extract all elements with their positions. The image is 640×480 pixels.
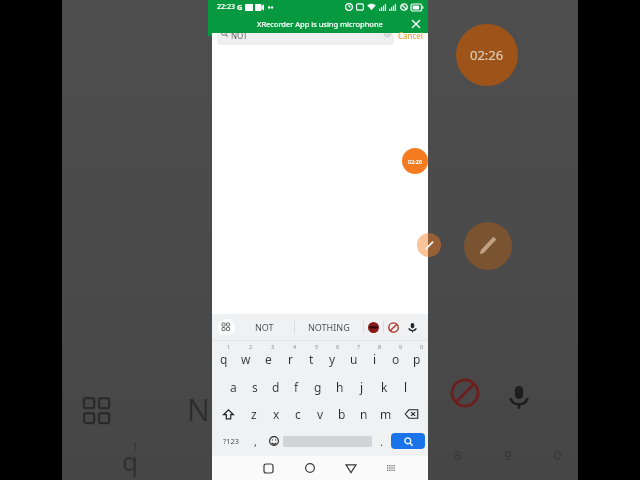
- staticText: l: [404, 379, 408, 395]
- button[interactable]: Recents: [248, 456, 289, 480]
- staticText: ,: [254, 434, 257, 449]
- staticText: 6: [336, 343, 340, 350]
- staticText: 9: [504, 446, 512, 464]
- staticText: NOT: [255, 321, 274, 333]
- button[interactable]: m: [375, 404, 397, 424]
- button[interactable]: y: [322, 344, 343, 370]
- button[interactable]: Back: [330, 456, 371, 480]
- staticText: 0: [420, 343, 424, 350]
- staticText: 8: [378, 343, 382, 350]
- staticText: 5: [315, 343, 319, 350]
- staticText: 9: [399, 343, 403, 350]
- staticText: G: [237, 2, 243, 12]
- staticText: w: [241, 351, 251, 367]
- staticText: 1: [132, 439, 139, 454]
- button[interactable]: Search: [391, 433, 425, 449]
- staticText: p: [413, 351, 421, 367]
- staticText: XRecorder App is using microphone: [257, 19, 383, 29]
- staticText: 02:26: [408, 158, 423, 165]
- button[interactable]: ?123: [215, 431, 247, 451]
- button[interactable]: i: [364, 344, 385, 370]
- button[interactable]: Cancel: [394, 33, 423, 45]
- button[interactable]: f: [286, 377, 307, 397]
- staticText: NOTHING: [308, 321, 350, 333]
- button[interactable]: n: [353, 404, 375, 424]
- staticText: .: [380, 434, 383, 449]
- button[interactable]: j: [351, 377, 373, 397]
- button[interactable]: x: [265, 404, 287, 424]
- staticText: 02:26: [470, 46, 504, 64]
- button[interactable]: NOT: [235, 314, 294, 340]
- button[interactable]: Shift: [214, 404, 243, 424]
- staticText: g: [314, 379, 322, 395]
- staticText: q: [122, 443, 138, 478]
- button[interactable]: r: [279, 344, 301, 370]
- button[interactable]: Backspace: [397, 404, 426, 424]
- staticText: N: [187, 389, 210, 430]
- button[interactable]: Dismiss: [410, 18, 422, 30]
- button[interactable]: t: [301, 344, 322, 370]
- button[interactable]: p: [406, 344, 427, 370]
- button[interactable]: q: [213, 344, 235, 370]
- button[interactable]: Hide keyboard: [371, 456, 412, 480]
- button[interactable]: .: [372, 431, 391, 451]
- staticText: 0: [554, 446, 562, 464]
- button[interactable]: a: [223, 377, 244, 397]
- button[interactable]: e: [257, 344, 279, 370]
- button[interactable]: Emoji: [264, 431, 283, 451]
- button[interactable]: Toolbar: [218, 319, 235, 336]
- staticText: 1: [227, 343, 231, 350]
- staticText: c: [295, 406, 301, 422]
- button[interactable]: ,: [247, 431, 264, 451]
- button[interactable]: z: [243, 404, 265, 424]
- staticText: NOT: [231, 33, 248, 41]
- button[interactable]: Edit: [417, 233, 441, 257]
- staticText: 22:23: [217, 2, 235, 12]
- staticText: h: [336, 379, 344, 395]
- staticText: s: [252, 379, 258, 395]
- staticText: e: [265, 351, 272, 367]
- staticText: u: [350, 351, 358, 367]
- staticText: ?123: [223, 436, 240, 446]
- button[interactable]: Voice input: [403, 318, 422, 337]
- staticText: t: [309, 351, 314, 367]
- staticText: i: [373, 351, 377, 367]
- button[interactable]: Emoji suggestion: [364, 318, 383, 337]
- button[interactable]: Block: [384, 318, 403, 337]
- button[interactable]: NOTHING: [295, 314, 363, 340]
- staticText: b: [338, 406, 346, 422]
- button[interactable]: XRecorder App is using microphone: [212, 14, 428, 33]
- staticText: 7: [357, 343, 361, 350]
- button[interactable]: NOT: [217, 33, 394, 45]
- staticText: z: [251, 406, 257, 422]
- staticText: 3: [271, 343, 275, 350]
- staticText: q: [220, 351, 228, 367]
- staticText: v: [317, 406, 324, 422]
- button[interactable]: l: [395, 377, 417, 397]
- button[interactable]: Home: [289, 456, 330, 480]
- staticText: a: [230, 379, 237, 395]
- button[interactable]: b: [331, 404, 353, 424]
- staticText: 4: [293, 343, 297, 350]
- button[interactable]: u: [343, 344, 364, 370]
- staticText: Cancel: [398, 30, 423, 41]
- button[interactable]: g: [307, 377, 329, 397]
- staticText: o: [392, 351, 400, 367]
- button[interactable]: c: [287, 404, 309, 424]
- staticText: 8: [454, 446, 462, 464]
- button[interactable]: o: [385, 344, 406, 370]
- button[interactable]: Recording timer: [402, 148, 428, 174]
- staticText: f: [294, 379, 299, 395]
- button[interactable]: d: [265, 377, 286, 397]
- button[interactable]: k: [373, 377, 395, 397]
- button[interactable]: s: [244, 377, 265, 397]
- button[interactable]: w: [235, 344, 257, 370]
- button[interactable]: v: [309, 404, 331, 424]
- staticText: n: [360, 406, 368, 422]
- staticText: k: [381, 379, 388, 395]
- button[interactable]: h: [329, 377, 351, 397]
- staticText: m: [380, 406, 392, 422]
- staticText: r: [288, 351, 293, 367]
- staticText: x: [273, 406, 280, 422]
